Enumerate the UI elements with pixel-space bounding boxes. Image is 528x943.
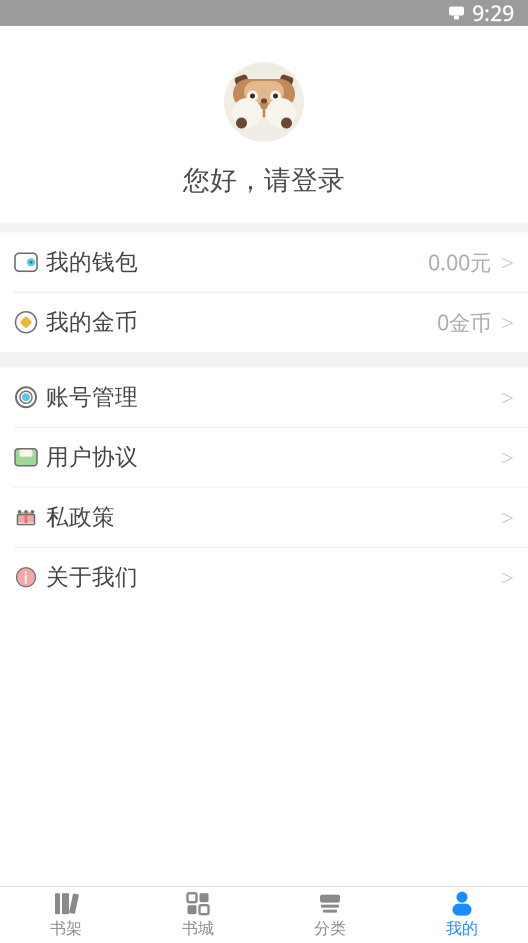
staticText: 分类: [314, 919, 346, 938]
staticText: i: [23, 567, 28, 588]
staticText: >: [501, 307, 514, 337]
staticText: 9:29: [472, 0, 514, 27]
button[interactable]: 用户协议: [0, 428, 528, 487]
staticText: 私政策: [46, 503, 115, 531]
button[interactable]: 我的: [396, 887, 528, 943]
button[interactable]: i: [0, 548, 528, 607]
staticText: 书城: [182, 919, 214, 938]
button[interactable]: 私政策: [0, 488, 528, 547]
staticText: >: [501, 442, 514, 472]
staticText: 0.00元: [428, 248, 491, 276]
staticText: 您好，请登录: [183, 164, 345, 197]
button[interactable]: 分类: [264, 887, 396, 943]
staticText: 关于我们: [46, 563, 138, 591]
staticText: 我的: [446, 919, 478, 938]
staticText: >: [501, 247, 514, 277]
staticText: >: [501, 502, 514, 532]
button[interactable]: 我的金币: [0, 293, 528, 352]
button[interactable]: 书架: [0, 887, 132, 943]
staticText: 账号管理: [46, 383, 138, 411]
button[interactable]: 我的钱包: [0, 233, 528, 292]
staticText: 我的金币: [46, 308, 138, 336]
button[interactable]: 书城: [132, 887, 264, 943]
staticText: 书架: [50, 919, 82, 938]
staticText: 用户协议: [46, 443, 138, 471]
staticText: 我的钱包: [46, 248, 138, 276]
button[interactable]: 账号管理: [0, 368, 528, 427]
staticText: 0金币: [437, 308, 491, 336]
staticText: >: [501, 382, 514, 412]
staticText: >: [501, 562, 514, 592]
